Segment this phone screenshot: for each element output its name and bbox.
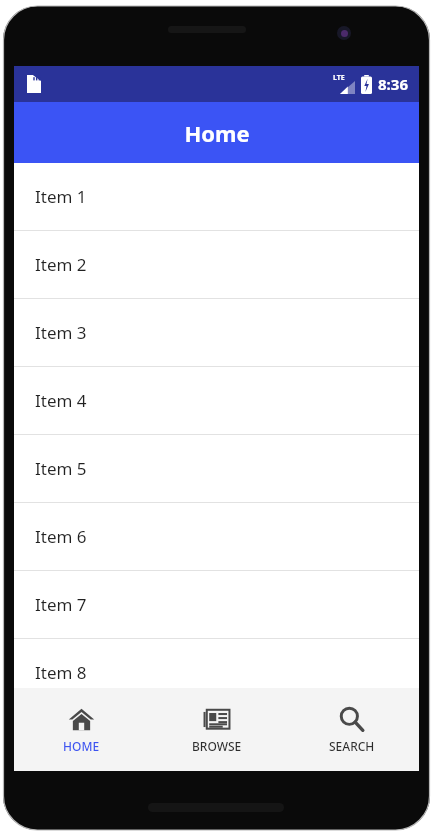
other: Browse — [203, 706, 230, 733]
other: Home — [68, 706, 95, 733]
staticText: 8:36 — [378, 74, 408, 94]
staticText: Item 8 — [35, 661, 87, 684]
staticText: Home — [184, 118, 250, 148]
staticText: Item 7 — [35, 593, 87, 616]
staticText: BROWSE — [192, 738, 242, 754]
staticText: Item 9 — [35, 728, 87, 751]
staticText: LTE — [333, 73, 345, 83]
button[interactable]: Item 7 — [14, 571, 419, 639]
button[interactable]: Search — [284, 688, 419, 771]
button[interactable]: Home — [14, 688, 149, 771]
staticText: Item 2 — [35, 253, 87, 276]
staticText: Item 5 — [35, 457, 87, 480]
staticText: HOME — [63, 738, 100, 754]
other: Search — [338, 706, 365, 733]
button[interactable]: Item 2 — [14, 231, 419, 299]
button[interactable]: Item 6 — [14, 503, 419, 571]
button[interactable]: Item 4 — [14, 367, 419, 435]
button[interactable]: Item 1 — [14, 163, 419, 231]
button[interactable]: Browse — [149, 688, 284, 771]
button[interactable]: Item 9 — [14, 707, 419, 771]
button[interactable]: Item 5 — [14, 435, 419, 503]
staticText: Item 4 — [35, 389, 87, 412]
button[interactable]: Item 8 — [14, 639, 419, 707]
staticText: Item 1 — [35, 185, 87, 208]
staticText: SEARCH — [329, 738, 375, 754]
button[interactable]: Item 3 — [14, 299, 419, 367]
staticText: Item 3 — [35, 321, 87, 344]
staticText: Item 6 — [35, 525, 87, 548]
